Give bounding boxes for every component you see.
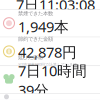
staticText: 節約できた金額 <box>18 36 53 42</box>
button[interactable]: 禁煙できた本数 <box>0 10 100 37</box>
staticText: 42,878円 <box>18 42 77 62</box>
button[interactable]: 延びた寿命 <box>0 66 100 93</box>
staticText: 禁煙できた本数 <box>18 10 53 17</box>
button[interactable]: 節約できた金額 <box>0 37 100 65</box>
staticText: 延びた寿命 <box>18 54 43 61</box>
staticText: 7日10時間39分 <box>18 61 87 100</box>
staticText: ※1箱20本580円で計算しています <box>18 62 77 67</box>
staticText: 7日11:03:08 <box>16 0 95 14</box>
staticText: 1,949本 <box>18 17 69 36</box>
